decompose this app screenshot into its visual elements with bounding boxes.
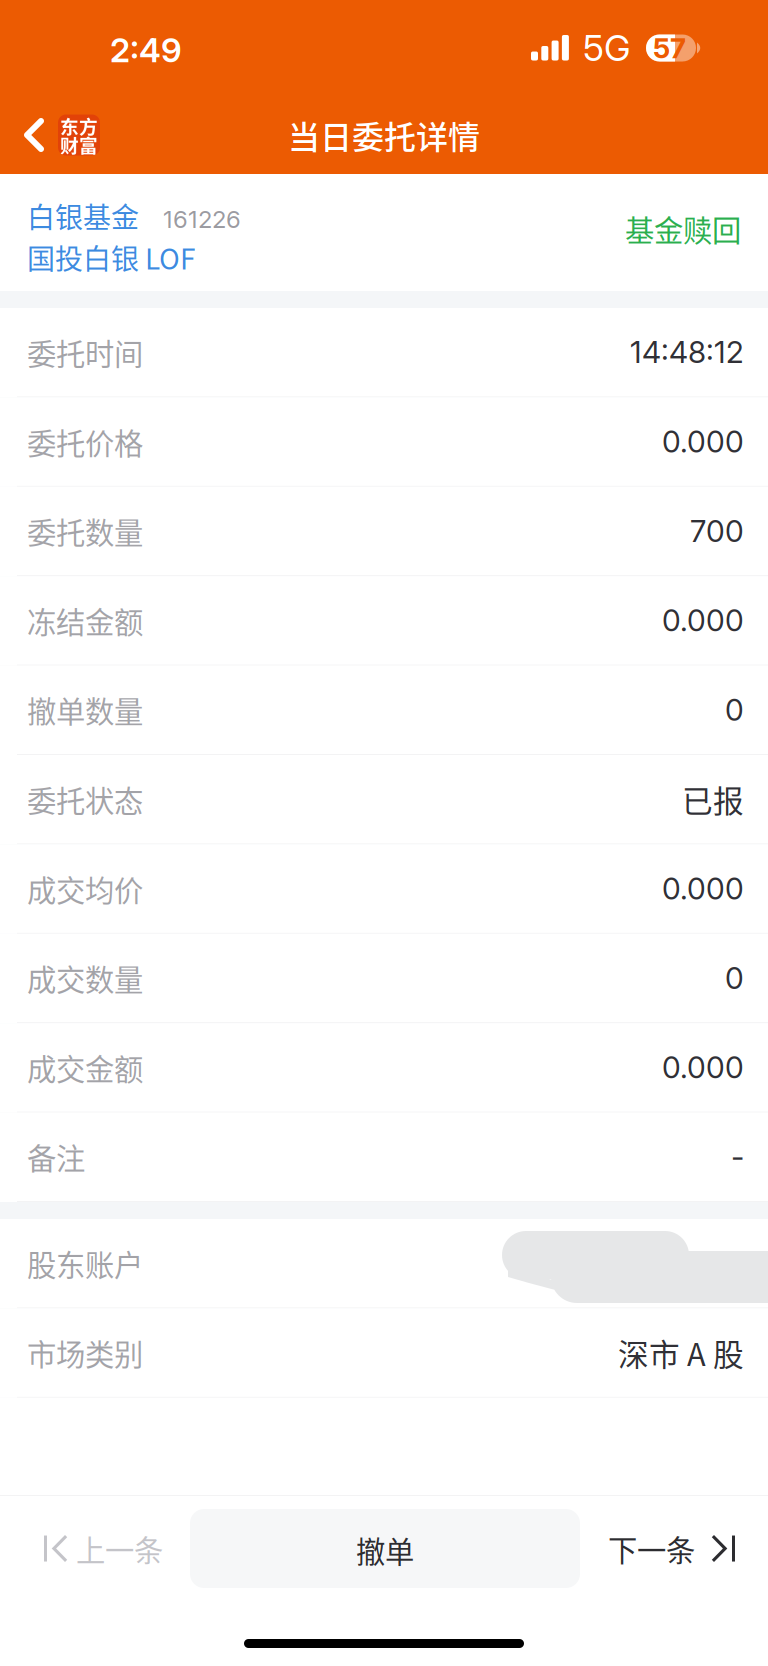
button[interactable]: 下一条 [580,1496,768,1601]
staticText: 已报 [682,777,744,821]
staticText: 委托数量 [27,510,143,552]
staticText: - [731,1139,744,1175]
staticText: 2:49 [110,30,182,70]
staticText: 成交均价 [27,867,143,910]
staticText: 5G [583,26,630,70]
button[interactable]: 上一条 [0,1496,190,1601]
staticText: 冻结金额 [27,599,143,642]
staticText: 0.000 [662,423,744,460]
staticText: 161226 [163,205,241,234]
button[interactable]: 撤单 [190,1509,580,1588]
staticText: 57 [653,31,686,65]
staticText: 市场类别 [27,1331,143,1374]
staticText: 白银基金 [27,195,139,236]
staticText: 0 [725,692,744,728]
staticText: 0.000 [662,1049,744,1086]
staticText: 下一条 [608,1527,695,1570]
staticText: 当日委托详情 [288,112,480,158]
button[interactable]: 东方 [0,96,100,174]
staticText: 撤单数量 [27,689,143,731]
staticText: 0 [725,960,744,996]
staticText: 700 [690,513,744,549]
staticText: 股东账户 [27,1242,143,1284]
staticText: 成交数量 [27,957,143,999]
staticText: 0.000 [662,870,744,907]
staticText: 14:48:12 [630,334,744,370]
staticText: 委托状态 [27,778,143,820]
staticText: 0.000 [662,602,744,639]
staticText: 备注 [27,1136,85,1178]
staticText: 东方 [60,112,98,139]
staticText: 成交金额 [27,1046,143,1089]
staticText: 基金赎回 [625,207,741,250]
staticText: 财富 [60,131,98,158]
staticText: 委托时间 [27,331,143,373]
staticText: 国投白银 LOF [27,237,195,277]
staticText: 上一条 [76,1527,163,1570]
staticText: 委托价格 [27,420,143,463]
staticText: 深市 A 股 [618,1330,744,1375]
staticText: 撤单 [356,1529,414,1571]
